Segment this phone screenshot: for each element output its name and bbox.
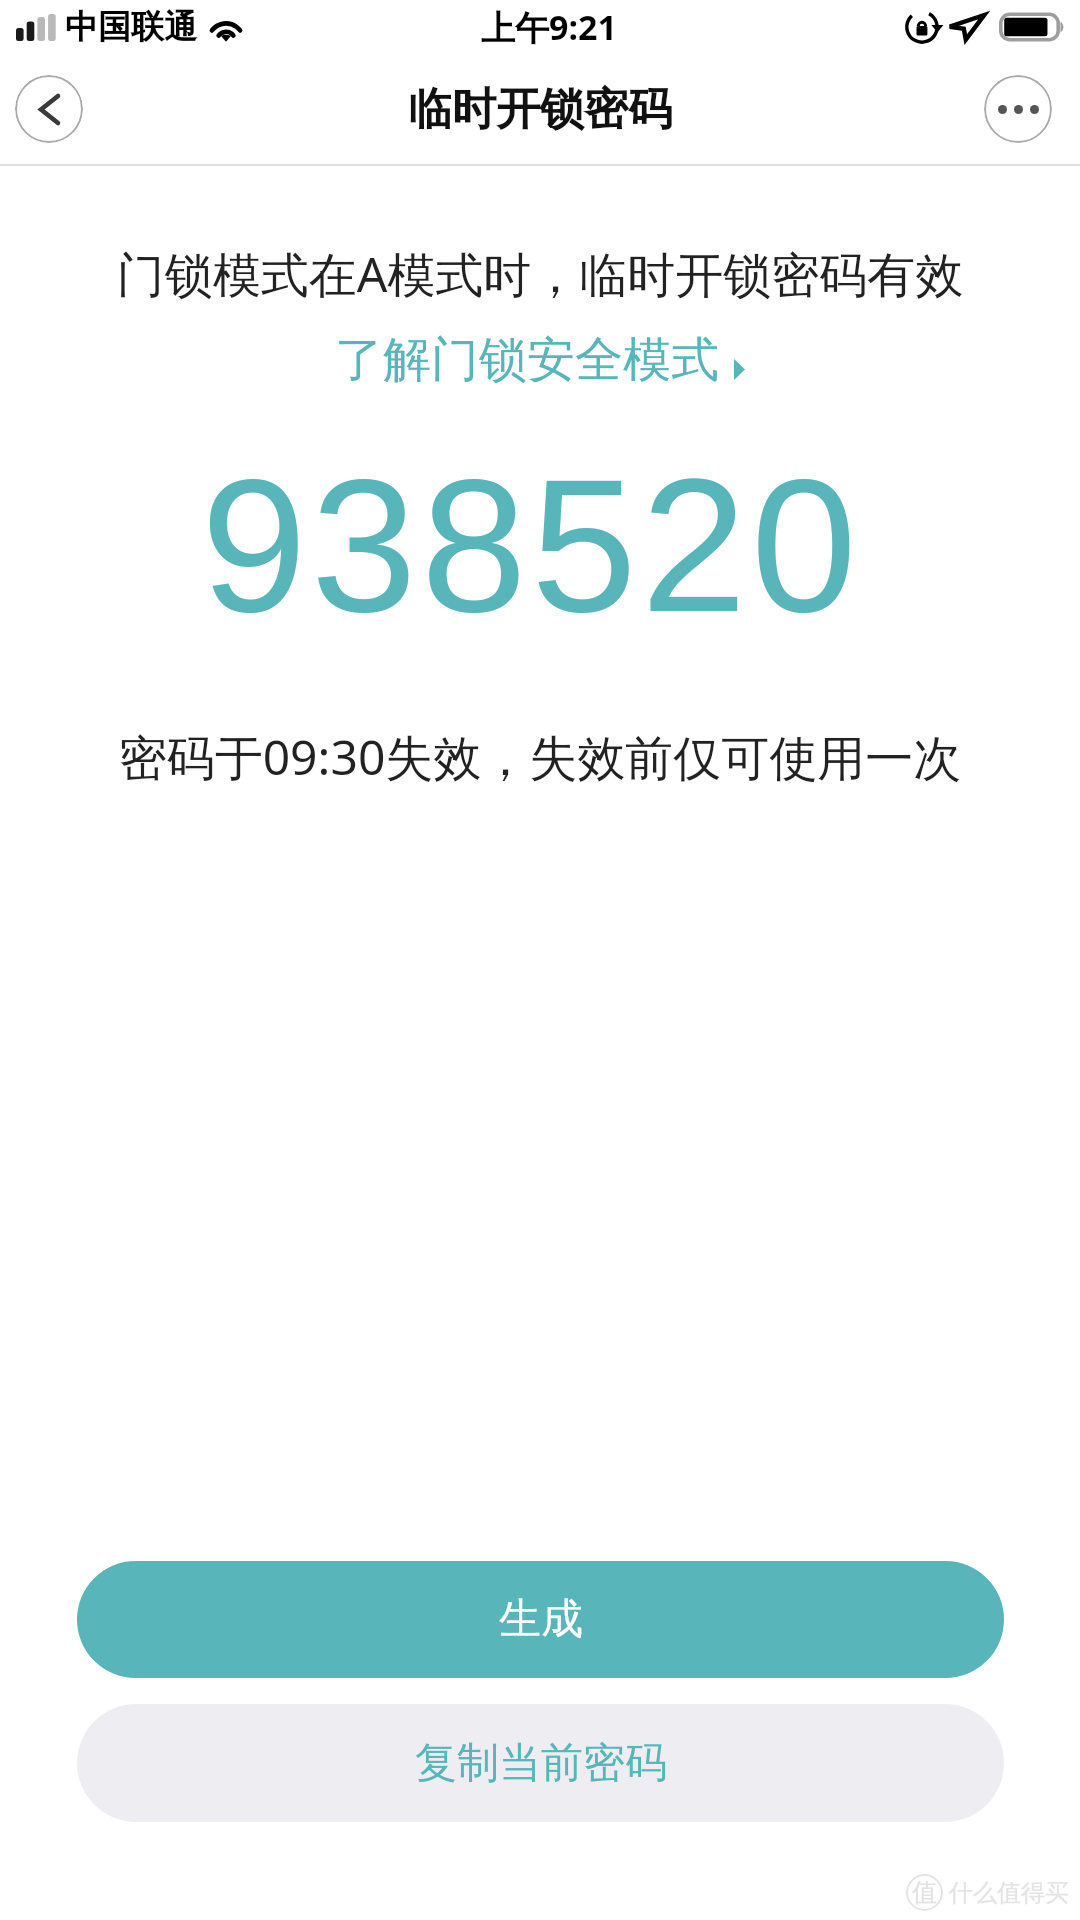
staticText: 上午9:21 <box>481 4 617 50</box>
button[interactable]: Back <box>15 75 83 143</box>
button[interactable]: 了解门锁安全模式 <box>335 330 745 390</box>
staticText: 密码于09:30失效，失效前仅可使用一次 <box>0 724 1080 790</box>
staticText: 复制当前密码 <box>415 1737 667 1790</box>
staticText: 临时开锁密码 <box>408 82 672 137</box>
staticText: 中国联通 <box>65 6 197 48</box>
button[interactable]: 复制当前密码 <box>77 1704 1004 1822</box>
staticText: 了解门锁安全模式 <box>335 330 719 390</box>
staticText: 什么值得买 <box>949 1878 1069 1908</box>
button[interactable]: More options <box>984 75 1052 143</box>
button[interactable]: 生成 <box>77 1561 1004 1678</box>
staticText: 生成 <box>499 1593 583 1646</box>
staticText: 938520 <box>0 439 1071 651</box>
staticText: 值 <box>912 1877 937 1908</box>
staticText: 门锁模式在A模式时，临时开锁密码有效 <box>0 241 1080 307</box>
